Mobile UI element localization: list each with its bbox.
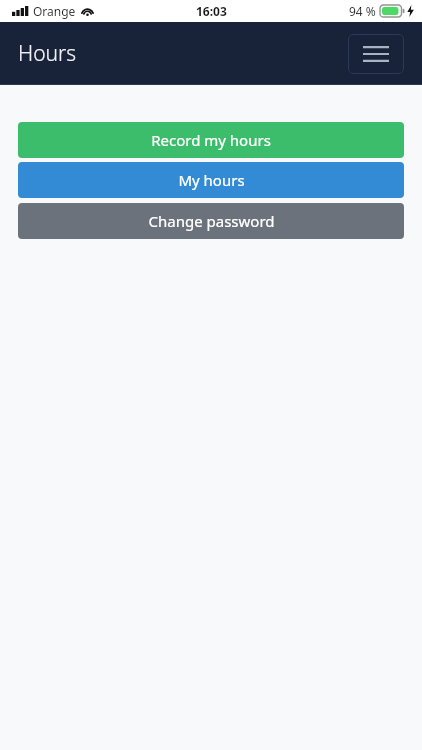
button[interactable]: Open navigation menu <box>348 34 404 74</box>
staticText: My hours <box>178 170 245 190</box>
button[interactable]: Change password <box>18 203 404 239</box>
staticText: 94 % <box>349 3 376 19</box>
staticText: Orange <box>33 3 76 19</box>
button[interactable]: Record my hours <box>18 122 404 158</box>
staticText: Change password <box>148 211 275 231</box>
button[interactable]: My hours <box>18 162 404 198</box>
staticText: Record my hours <box>151 130 271 150</box>
staticText: Hours <box>18 39 77 68</box>
staticText: 16:03 <box>196 3 227 19</box>
